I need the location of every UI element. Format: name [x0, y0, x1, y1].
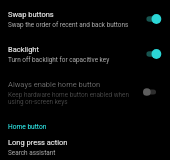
staticText: Backlight: [8, 45, 39, 54]
staticText: Home button: [8, 123, 47, 131]
button[interactable]: Swap buttons: [0, 4, 170, 38]
button[interactable]: Toggle, on: [146, 12, 166, 26]
staticText: Long press action: [8, 138, 68, 147]
staticText: Swap buttons: [8, 10, 54, 19]
button[interactable]: Toggle, on: [146, 47, 166, 61]
staticText: Swap the order of recent and back button…: [8, 21, 129, 29]
staticText: Keep hardware home button enabled when u…: [8, 91, 132, 105]
staticText: Turn off backlight for capacitive key: [8, 56, 110, 64]
button[interactable]: Toggle, off: [143, 85, 163, 99]
staticText: Always enable home button: [8, 80, 101, 89]
button[interactable]: Always enable home button: [0, 74, 170, 114]
button[interactable]: Backlight: [0, 39, 170, 73]
button[interactable]: Long press action: [0, 134, 170, 160]
staticText: Search assistant: [8, 149, 56, 157]
